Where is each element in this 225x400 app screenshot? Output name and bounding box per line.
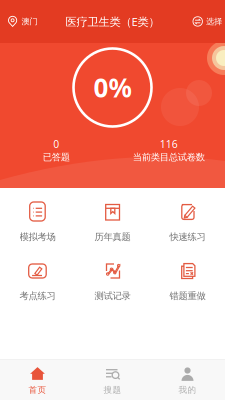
button[interactable]: 首页: [0, 359, 75, 400]
staticText: 测试记录: [94, 290, 130, 302]
button[interactable]: 当前城市 澳门: [0, 0, 45, 43]
staticText: 澳门: [21, 16, 37, 27]
staticText: 模拟考场: [19, 231, 55, 243]
button[interactable]: 搜题: [75, 359, 150, 400]
staticText: 历年真题: [94, 231, 130, 243]
staticText: 搜题: [103, 384, 121, 395]
staticText: 快速练习: [169, 231, 205, 243]
staticText: 选择: [206, 16, 222, 27]
button[interactable]: 我的: [150, 359, 225, 400]
staticText: 0: [53, 137, 59, 151]
staticText: 医疗卫生类（E类）: [65, 14, 159, 29]
staticText: 我的: [178, 384, 196, 395]
button[interactable]: 测试记录: [75, 261, 150, 320]
staticText: 首页: [28, 384, 46, 395]
staticText: 当前类目总试卷数: [133, 151, 205, 163]
staticText: 116: [160, 137, 178, 151]
button[interactable]: 模拟考场: [0, 202, 75, 261]
button[interactable]: 历年真题: [75, 202, 150, 261]
button[interactable]: 错题重做: [150, 261, 225, 320]
button[interactable]: 快速练习: [150, 202, 225, 261]
staticText: 已答题: [43, 151, 70, 163]
staticText: 考点练习: [19, 290, 55, 302]
staticText: 错题重做: [169, 290, 205, 302]
button[interactable]: 考点练习: [0, 261, 75, 320]
button[interactable]: 选择考试类目: [184, 0, 225, 43]
staticText: 0%: [93, 70, 131, 105]
